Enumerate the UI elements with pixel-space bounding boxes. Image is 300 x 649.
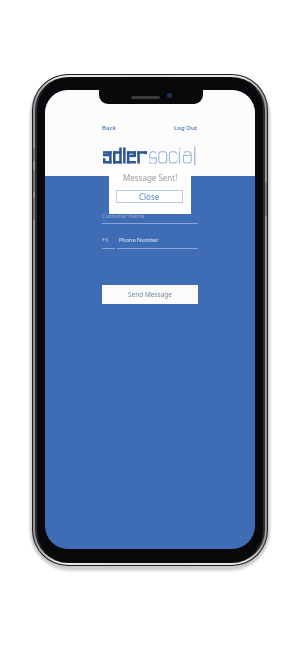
staticText: Close [139,191,160,202]
button[interactable]: Log Out [174,124,198,132]
button[interactable]: Close [116,190,183,203]
staticText: Send Message [128,290,173,299]
staticText: Customer Name [102,212,145,219]
staticText: +1 [102,236,109,243]
button[interactable]: Back [102,124,117,132]
staticText: Message Sent! [123,172,178,183]
staticText: Phone Number [119,236,159,243]
button[interactable]: Send Message [102,285,198,304]
